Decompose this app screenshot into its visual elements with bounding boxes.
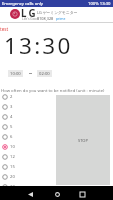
staticText: test — [0, 26, 9, 32]
button[interactable]: 6 — [0, 132, 54, 142]
staticText: prime — [56, 16, 66, 21]
staticText: STOP — [78, 138, 88, 143]
staticText: How often do you want to be notified (un… — [1, 87, 105, 93]
staticText: 2 — [10, 94, 13, 100]
button[interactable]: 3 — [0, 102, 54, 112]
button[interactable]: Back — [24, 188, 36, 200]
button[interactable]: 20 — [0, 172, 54, 182]
staticText: 30 — [10, 184, 15, 190]
staticText: LG — [21, 7, 38, 20]
staticText: 3 — [10, 104, 13, 110]
staticText: LG ゲーミングモニター — [37, 10, 78, 15]
staticText: ¥108,328 — [37, 16, 54, 21]
button[interactable]: 12 — [0, 152, 54, 162]
button[interactable]: Home — [51, 188, 63, 200]
button[interactable]: 15 — [0, 162, 54, 172]
button[interactable]: 02:00 — [37, 70, 52, 77]
staticText: 12 — [10, 154, 15, 160]
staticText: 100% 13:30 — [88, 1, 111, 7]
staticText: 5 — [10, 124, 13, 130]
staticText: 15 — [10, 164, 15, 170]
staticText: 4 — [10, 114, 13, 120]
staticText: 02:00 — [39, 71, 50, 77]
button[interactable]: 10:00 — [8, 70, 23, 77]
button[interactable]: 5 — [0, 122, 54, 132]
staticText: 10:00 — [10, 71, 21, 77]
button[interactable]: 4 — [0, 112, 54, 122]
staticText: 20 — [10, 174, 15, 180]
staticText: Emergency calls only — [2, 1, 44, 7]
staticText: 6 — [10, 134, 13, 140]
button[interactable]: 10 — [0, 142, 54, 152]
staticText: 10 — [10, 144, 15, 150]
button[interactable]: Recents — [76, 188, 88, 200]
button[interactable]: 2 — [0, 92, 54, 102]
staticText: Life's Good — [22, 17, 39, 21]
button[interactable]: 30 — [0, 182, 54, 192]
staticText: 13:30 — [4, 30, 73, 61]
